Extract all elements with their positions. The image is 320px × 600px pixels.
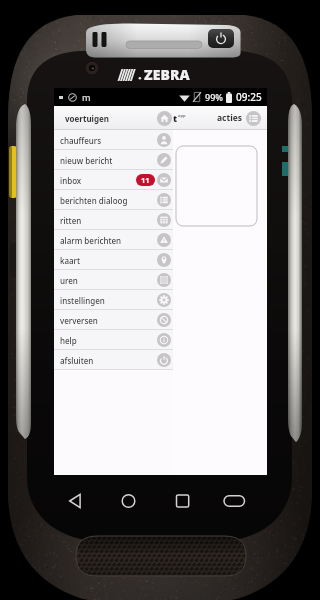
button[interactable]: Home bbox=[102, 475, 154, 511]
button[interactable]: help bbox=[54, 330, 173, 350]
staticText: ritten bbox=[60, 215, 82, 226]
button[interactable]: kaart bbox=[54, 250, 173, 270]
staticText: berichten dialoog bbox=[60, 195, 128, 206]
button[interactable]: voertuigen bbox=[54, 106, 173, 130]
button[interactable]: alarm berichten bbox=[54, 230, 173, 250]
button[interactable]: Home bbox=[157, 106, 186, 130]
button[interactable]: verversen bbox=[54, 310, 173, 330]
staticText: ZEBRA bbox=[144, 65, 190, 84]
button[interactable]: nieuw bericht bbox=[54, 150, 173, 170]
staticText: verversen bbox=[60, 315, 98, 326]
button[interactable]: ritten bbox=[54, 210, 173, 230]
staticText: app bbox=[178, 113, 186, 118]
staticText: 11 bbox=[141, 175, 150, 185]
button[interactable]: uren bbox=[54, 270, 173, 290]
staticText: m bbox=[82, 91, 91, 103]
staticText: chauffeurs bbox=[60, 135, 102, 146]
staticText: afsluiten bbox=[60, 355, 94, 366]
staticText: voertuigen bbox=[65, 113, 110, 124]
staticText: acties bbox=[217, 112, 243, 124]
button[interactable]: Apps bbox=[154, 475, 204, 511]
button[interactable]: acties bbox=[217, 106, 261, 130]
staticText: kaart bbox=[60, 255, 81, 266]
button[interactable]: instellingen bbox=[54, 290, 173, 310]
button[interactable]: berichten dialoog bbox=[54, 190, 173, 210]
button[interactable]: Recent apps bbox=[204, 475, 256, 511]
staticText: uren bbox=[60, 275, 78, 286]
staticText: instellingen bbox=[60, 295, 105, 306]
staticText: 99% bbox=[205, 91, 223, 103]
button[interactable]: Back bbox=[54, 475, 102, 511]
staticText: 09:25 bbox=[236, 90, 262, 104]
staticText: alarm berichten bbox=[60, 235, 122, 246]
staticText: help bbox=[60, 335, 77, 346]
staticText: nieuw bericht bbox=[60, 155, 113, 166]
button[interactable]: afsluiten bbox=[54, 350, 173, 370]
button[interactable]: chauffeurs bbox=[54, 130, 173, 150]
staticText: t bbox=[173, 112, 178, 124]
staticText: inbox bbox=[60, 175, 82, 186]
button[interactable]: inbox bbox=[54, 170, 173, 190]
